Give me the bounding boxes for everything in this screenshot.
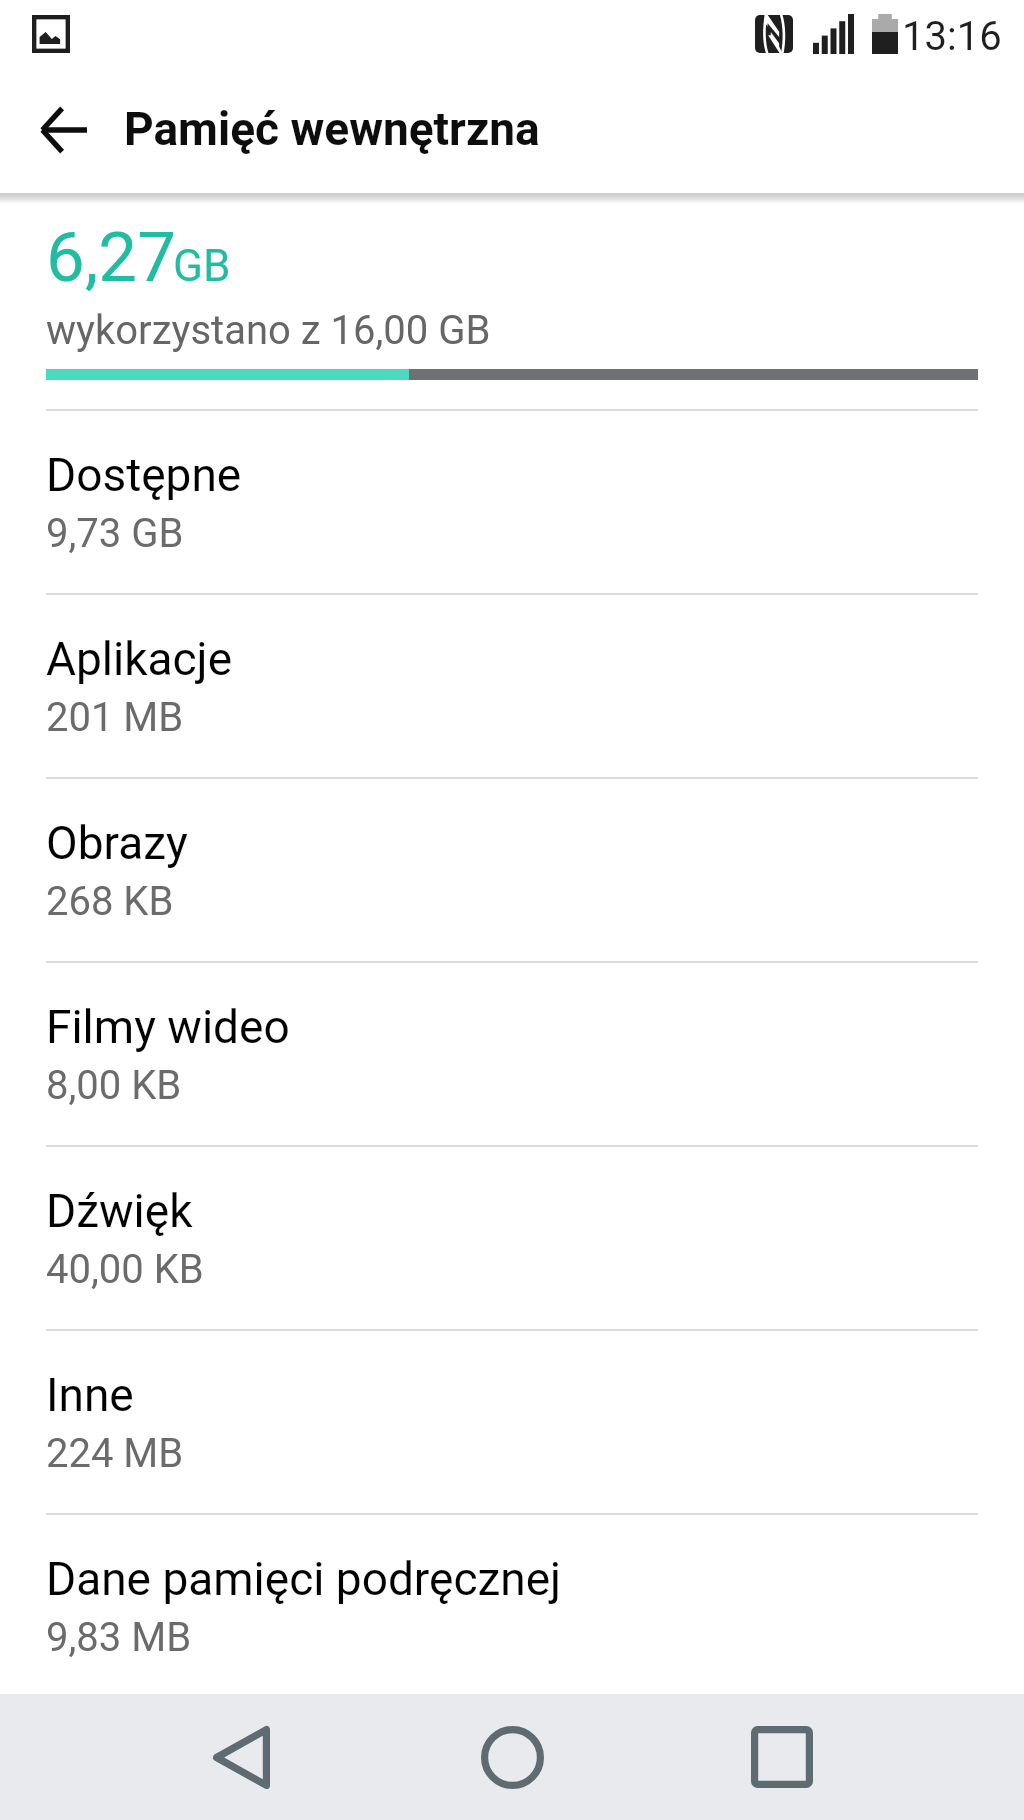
button[interactable]: Recent apps <box>719 1694 845 1820</box>
staticText: 224 MB <box>46 1430 184 1477</box>
staticText: Obrazy <box>46 816 188 870</box>
staticText: 9,73 GB <box>46 510 184 557</box>
button[interactable]: Dostępne <box>0 411 1024 593</box>
button[interactable]: Filmy wideo <box>0 963 1024 1145</box>
button[interactable]: Aplikacje <box>0 595 1024 777</box>
staticText: 8,00 KB <box>46 1062 182 1109</box>
button[interactable]: Obrazy <box>0 779 1024 961</box>
button[interactable]: Back <box>178 1694 304 1820</box>
staticText: Dźwięk <box>46 1184 193 1238</box>
staticText: 13:16 <box>902 13 1002 60</box>
staticText: 6,27 <box>46 217 176 298</box>
staticText: Inne <box>46 1368 134 1422</box>
staticText: Filmy wideo <box>46 1000 290 1054</box>
staticText: 40,00 KB <box>46 1246 204 1293</box>
button[interactable]: Dane pamięci podręcznej <box>0 1515 1024 1697</box>
button[interactable]: Inne <box>0 1331 1024 1513</box>
staticText: 9,83 MB <box>46 1614 192 1661</box>
staticText: Pamięć wewnętrzna <box>124 102 540 156</box>
staticText: 268 KB <box>46 878 174 925</box>
button[interactable]: Back <box>14 66 114 194</box>
staticText: GB <box>173 240 231 292</box>
staticText: 201 MB <box>46 694 184 741</box>
staticText: Aplikacje <box>46 632 233 686</box>
staticText: wykorzystano z 16,00 GB <box>46 307 491 354</box>
button[interactable]: Home <box>449 1694 575 1820</box>
staticText: Dostępne <box>46 448 242 502</box>
staticText: Dane pamięci podręcznej <box>46 1552 562 1606</box>
button[interactable]: Dźwięk <box>0 1147 1024 1329</box>
